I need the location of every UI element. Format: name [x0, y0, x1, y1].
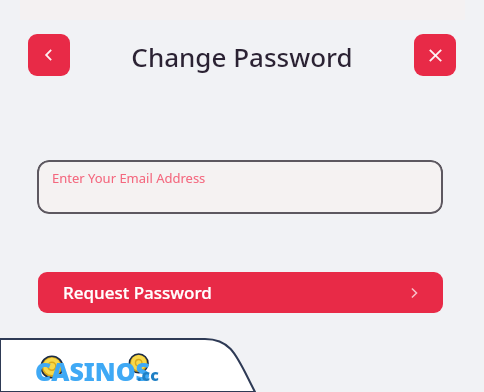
- button[interactable]: Casinos.cc logo: [33, 349, 173, 385]
- button[interactable]: Close: [414, 34, 456, 76]
- staticText: Enter Your Email Address: [52, 169, 206, 187]
- staticText: CASINOS: [35, 354, 151, 388]
- staticText: Request Password: [63, 281, 212, 304]
- staticText: Change Password: [0, 39, 484, 74]
- button[interactable]: Enter Your Email Address: [37, 160, 443, 214]
- staticText: .cc: [137, 364, 159, 386]
- button[interactable]: Back: [28, 34, 70, 76]
- button[interactable]: Request Password: [38, 272, 443, 313]
